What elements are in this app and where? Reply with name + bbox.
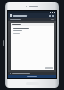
button[interactable] <box>8 18 56 21</box>
button[interactable]: Menu <box>8 13 56 18</box>
button[interactable]: Action <box>49 15 51 17</box>
button[interactable]: Info <box>8 72 56 75</box>
button[interactable] <box>11 23 54 26</box>
button[interactable] <box>8 75 56 78</box>
button[interactable]: Action <box>52 15 54 17</box>
